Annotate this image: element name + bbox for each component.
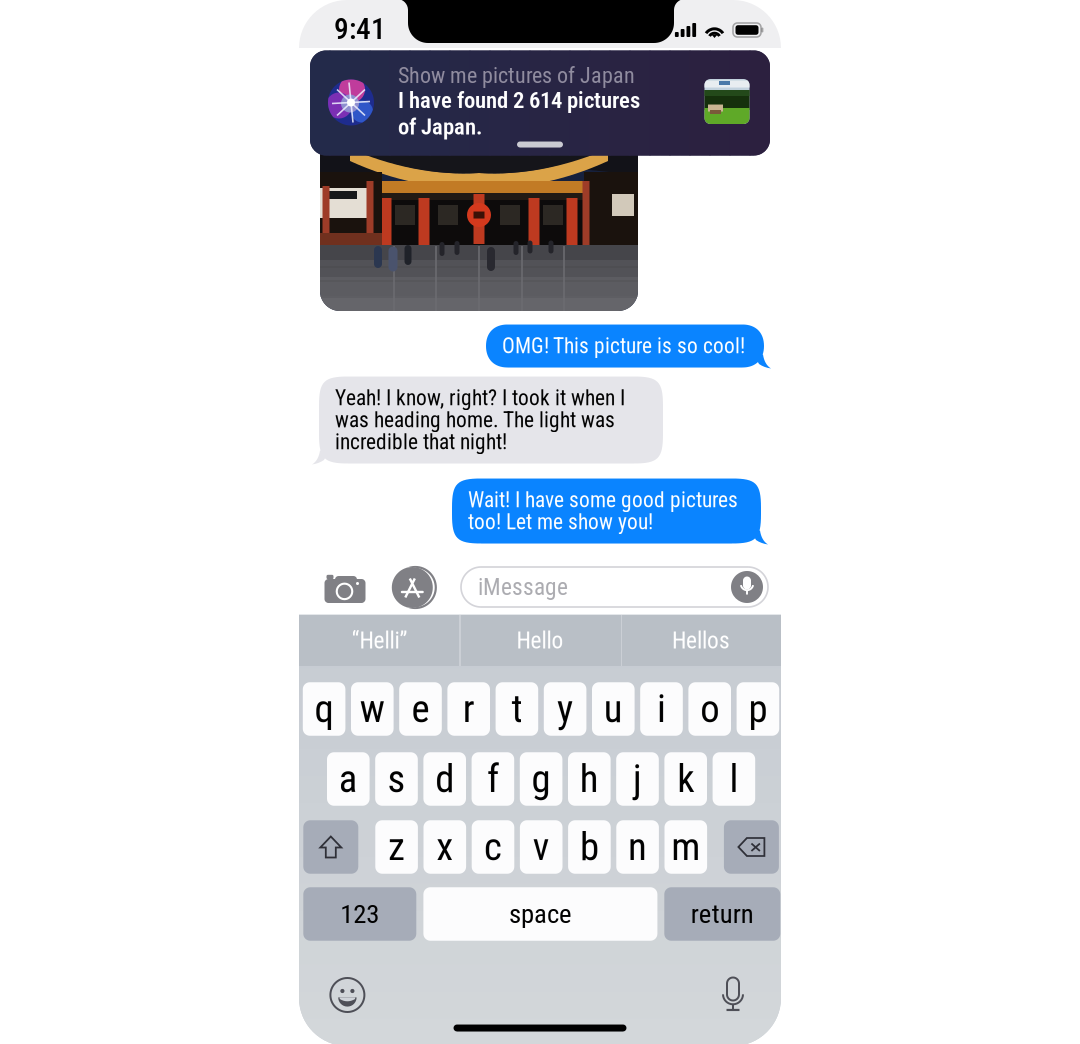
- button[interactable]: Hellos: [622, 615, 780, 666]
- staticText: 123: [340, 898, 379, 930]
- button[interactable]: v: [520, 820, 562, 874]
- button[interactable]: c: [472, 820, 514, 874]
- staticText: Show me pictures of Japan: [398, 63, 635, 88]
- button[interactable]: space: [423, 887, 657, 941]
- staticText: w: [360, 686, 385, 732]
- button[interactable]: k: [664, 752, 707, 806]
- staticText: Yeah! I know, right? I took it when I wa…: [335, 385, 625, 454]
- button[interactable]: p: [737, 682, 779, 736]
- staticText: m: [671, 824, 700, 870]
- button[interactable]: iMessage: [461, 567, 768, 607]
- staticText: b: [580, 824, 599, 870]
- button[interactable]: s: [375, 752, 418, 806]
- button[interactable]: e: [399, 682, 442, 736]
- staticText: d: [435, 756, 454, 802]
- button[interactable]: b: [568, 820, 611, 874]
- staticText: g: [532, 756, 551, 802]
- button[interactable]: [724, 820, 779, 874]
- staticText: Wait! I have some good pictures too! Let…: [468, 487, 738, 534]
- staticText: OMG! This picture is so cool!: [502, 333, 745, 358]
- staticText: c: [484, 824, 502, 870]
- button[interactable]: g: [520, 752, 562, 806]
- staticText: 9:41: [334, 12, 386, 46]
- button[interactable]: q: [303, 682, 345, 736]
- staticText: h: [580, 756, 599, 802]
- button[interactable]: m: [664, 820, 707, 874]
- staticText: Hello: [516, 627, 563, 654]
- staticText: space: [509, 898, 572, 930]
- staticText: z: [388, 824, 405, 870]
- staticText: x: [436, 824, 453, 870]
- button[interactable]: f: [472, 752, 514, 806]
- button[interactable]: Dictation: [721, 976, 745, 1011]
- staticText: return: [691, 898, 754, 930]
- staticText: o: [700, 686, 719, 732]
- staticText: t: [511, 686, 522, 732]
- staticText: e: [411, 686, 429, 732]
- staticText: l: [729, 756, 738, 802]
- button[interactable]: o: [688, 682, 731, 736]
- staticText: p: [748, 686, 767, 732]
- staticText: Hellos: [672, 627, 730, 654]
- staticText: y: [557, 686, 573, 732]
- button[interactable]: x: [423, 820, 466, 874]
- button[interactable]: “Helli”: [300, 615, 458, 666]
- staticText: j: [633, 756, 642, 802]
- staticText: v: [533, 824, 550, 870]
- button[interactable]: y: [544, 682, 586, 736]
- button[interactable]: d: [423, 752, 466, 806]
- button[interactable]: i: [640, 682, 683, 736]
- button[interactable]: j: [616, 752, 659, 806]
- staticText: s: [387, 756, 405, 802]
- button[interactable]: r: [447, 682, 490, 736]
- button[interactable]: Hello: [461, 615, 619, 666]
- button[interactable]: a: [327, 752, 370, 806]
- staticText: i: [657, 686, 666, 732]
- staticText: u: [604, 686, 623, 732]
- button[interactable]: [303, 820, 358, 874]
- staticText: n: [628, 824, 647, 870]
- button[interactable]: u: [592, 682, 635, 736]
- button[interactable]: t: [496, 682, 538, 736]
- button[interactable]: z: [375, 820, 418, 874]
- staticText: r: [463, 686, 475, 732]
- button[interactable]: 123: [303, 887, 416, 941]
- button[interactable]: w: [351, 682, 394, 736]
- button[interactable]: n: [616, 820, 659, 874]
- button[interactable]: l: [713, 752, 755, 806]
- staticText: “Helli”: [351, 627, 407, 654]
- button[interactable]: return: [664, 887, 780, 941]
- button[interactable]: h: [568, 752, 611, 806]
- staticText: f: [487, 756, 499, 802]
- staticText: k: [677, 756, 694, 802]
- staticText: iMessage: [478, 573, 568, 601]
- button[interactable]: Camera: [324, 572, 365, 603]
- staticText: q: [315, 686, 334, 732]
- button[interactable]: App Store: [392, 567, 436, 608]
- staticText: a: [339, 756, 358, 802]
- staticText: I have found 2 614 pictures of Japan.: [398, 87, 640, 140]
- button[interactable]: Emoji keyboard: [330, 978, 364, 1012]
